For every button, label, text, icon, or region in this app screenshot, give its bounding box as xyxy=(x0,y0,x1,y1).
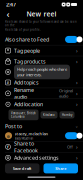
staticText: Also share to Feed xyxy=(5,36,49,43)
staticText: Help reach people who share your interes… xyxy=(17,67,67,77)
staticText: Original audio xyxy=(59,88,73,99)
staticText: New reel xyxy=(26,10,56,18)
staticText: › xyxy=(76,101,78,108)
button[interactable]: # xyxy=(0,77,83,88)
staticText: Post to xyxy=(5,123,22,130)
staticText: # xyxy=(6,80,9,85)
staticText: ⌄ xyxy=(75,124,78,128)
staticText: Tag people xyxy=(14,47,40,54)
staticText: › xyxy=(76,143,78,150)
staticText: › xyxy=(76,90,78,97)
staticText: › xyxy=(76,154,78,161)
staticText: ‹ xyxy=(6,8,9,20)
staticText: Vancouver, British Columbia xyxy=(11,111,36,118)
button[interactable]: Back xyxy=(3,9,13,19)
staticText: Stacey McLachlan xyxy=(14,137,33,140)
staticText: Reels are shared to your followers and c… xyxy=(5,20,77,27)
button[interactable]: Share xyxy=(43,163,78,173)
staticText: Add location xyxy=(14,101,43,108)
button[interactable]: Advanced settings xyxy=(0,152,83,163)
staticText: Hornby xyxy=(62,113,72,117)
button[interactable]: Kitsilano xyxy=(40,111,57,118)
staticText: Tag products xyxy=(14,58,46,65)
staticText: 2:47 xyxy=(6,1,16,8)
staticText: Advanced settings xyxy=(14,154,59,161)
staticText: › xyxy=(76,79,78,86)
staticText: Share xyxy=(55,166,66,171)
button[interactable]: Rename audio xyxy=(0,88,83,99)
button[interactable]: Also share to Feed xyxy=(0,34,83,45)
button[interactable]: Hornby xyxy=(59,111,74,118)
button[interactable]: Save draft xyxy=(5,163,39,173)
staticText: Add topics xyxy=(14,79,39,86)
staticText: › xyxy=(76,47,78,54)
staticText: stacey_mclachlan xyxy=(14,131,48,136)
staticText: Share to Facebook xyxy=(14,140,38,154)
button[interactable]: stacey_mclachlan xyxy=(0,130,83,141)
button[interactable]: Add location xyxy=(0,99,83,109)
staticText: Kitsilano xyxy=(43,113,55,117)
staticText: Rename audio xyxy=(14,86,34,100)
button[interactable]: Tag products xyxy=(0,56,83,67)
staticText: Reels tab of your profile. xyxy=(5,28,41,31)
staticText: Save draft xyxy=(13,166,32,171)
staticText: › xyxy=(76,58,78,65)
button[interactable]: Tag people xyxy=(0,45,83,56)
button[interactable]: Vancouver, British Columbia xyxy=(8,109,38,120)
staticText: Off xyxy=(67,144,73,149)
button[interactable]: f xyxy=(0,142,83,152)
staticText: f xyxy=(7,144,9,149)
